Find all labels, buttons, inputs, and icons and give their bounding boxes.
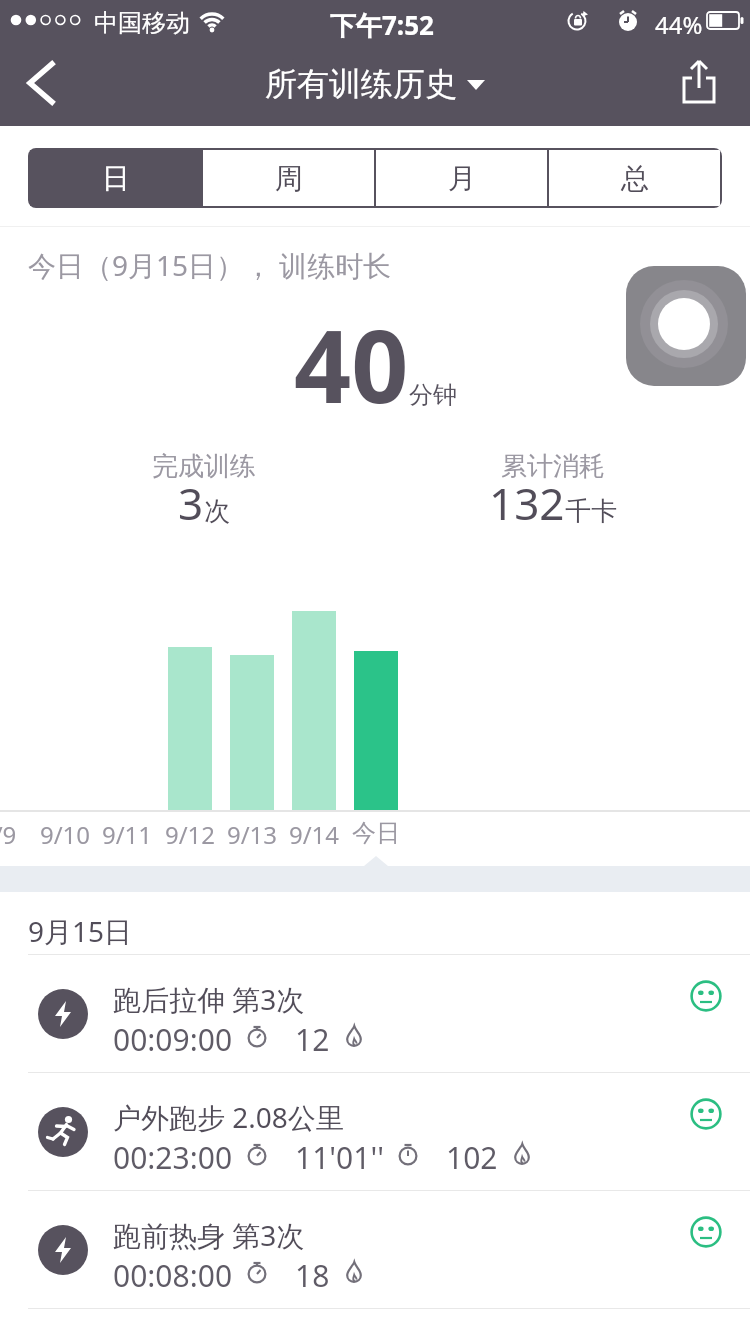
- staticText: 日: [102, 161, 130, 196]
- staticText: 今日（9月15日）， 训练时长: [28, 246, 392, 284]
- staticText: 11'01'': [295, 1137, 384, 1171]
- staticText: 00:08:00: [113, 1255, 233, 1289]
- staticText: 月: [448, 161, 476, 196]
- staticText: 中国移动: [94, 8, 190, 38]
- staticText: 累计消耗: [501, 450, 605, 483]
- button[interactable]: [626, 266, 746, 386]
- staticText: 次: [204, 495, 230, 528]
- staticText: 所有训练历史: [265, 64, 457, 104]
- button[interactable]: 跑前热身 第3次: [0, 1191, 750, 1308]
- staticText: 00:23:00: [113, 1137, 233, 1171]
- button[interactable]: 跑后拉伸 第3次: [0, 955, 750, 1072]
- staticText: 9/13: [212, 818, 292, 851]
- button[interactable]: 月: [376, 150, 547, 206]
- button[interactable]: 日: [30, 150, 201, 206]
- staticText: 今日: [336, 818, 416, 848]
- staticText: 3: [178, 473, 204, 533]
- staticText: 千卡: [565, 495, 617, 528]
- staticText: 00:09:00: [113, 1019, 233, 1053]
- button[interactable]: 户外跑步 2.08公里: [0, 1073, 750, 1190]
- staticText: 18: [295, 1255, 330, 1289]
- staticText: 分钟: [409, 380, 457, 410]
- button[interactable]: [672, 52, 734, 114]
- staticText: 12: [295, 1019, 330, 1053]
- staticText: 9/14: [274, 818, 354, 851]
- staticText: 44%: [655, 8, 703, 41]
- staticText: 户外跑步 2.08公里: [113, 1098, 344, 1136]
- button[interactable]: 总: [549, 150, 720, 206]
- staticText: 40: [294, 296, 409, 432]
- staticText: 跑后拉伸 第3次: [113, 980, 305, 1018]
- staticText: 102: [446, 1137, 498, 1171]
- staticText: 完成训练: [152, 450, 256, 483]
- staticText: /9: [0, 818, 45, 851]
- staticText: 周: [275, 161, 303, 196]
- staticText: 总: [621, 161, 649, 196]
- staticText: 9/12: [150, 818, 230, 851]
- button[interactable]: 周: [203, 150, 374, 206]
- button[interactable]: [10, 50, 80, 116]
- staticText: 跑前热身 第3次: [113, 1216, 305, 1254]
- staticText: 9/10: [25, 818, 105, 851]
- staticText: 9月15日: [28, 912, 133, 950]
- staticText: 9/11: [87, 818, 167, 851]
- staticText: 下午7:52: [330, 7, 434, 43]
- staticText: 132: [489, 473, 565, 533]
